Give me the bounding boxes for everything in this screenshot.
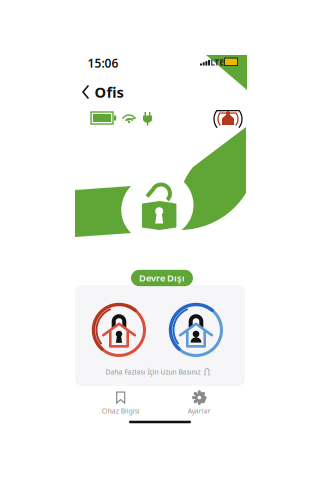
button[interactable]: Ev modu <box>165 299 227 361</box>
button[interactable]: Kilitle <box>88 299 150 361</box>
button[interactable]: Back <box>77 81 95 103</box>
staticText: Devre Dışı <box>139 272 185 284</box>
staticText: LTE <box>210 57 223 68</box>
staticText: 15:06 <box>87 55 118 71</box>
staticText: Ayarlar <box>188 407 211 415</box>
staticText: Daha Fazlası İçin Uzun Basınız <box>105 368 200 376</box>
button[interactable]: Ayarlar <box>169 391 229 415</box>
staticText: Ofis <box>94 82 123 102</box>
staticText: Cihaz Bilgisi <box>102 407 140 415</box>
button[interactable]: Cihaz Bilgisi <box>91 391 151 415</box>
